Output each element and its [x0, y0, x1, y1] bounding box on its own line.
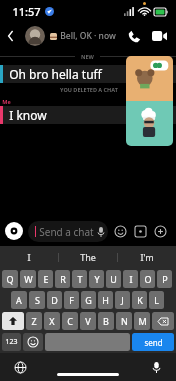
- button[interactable]: K: [132, 291, 147, 309]
- button[interactable]: Z: [26, 312, 42, 330]
- button[interactable]: Send a chat: [28, 221, 108, 242]
- button[interactable]: G: [81, 291, 96, 309]
- staticText: W: [24, 273, 33, 285]
- button[interactable]: X: [44, 312, 60, 330]
- staticText: E: [43, 273, 49, 285]
- button[interactable]: Snap: [126, 101, 173, 146]
- button[interactable]: Video call: [146, 23, 172, 49]
- button[interactable]: Camera: [5, 222, 23, 240]
- button[interactable]: O: [140, 270, 155, 288]
- button[interactable]: Numbers: [2, 333, 21, 351]
- button[interactable]: Q: [2, 270, 18, 288]
- button[interactable]: More: [152, 223, 169, 240]
- button[interactable]: N: [116, 312, 132, 330]
- staticText: C: [67, 315, 73, 327]
- staticText: Oh bro hella tuff: [9, 66, 102, 82]
- staticText: D: [51, 294, 58, 306]
- button[interactable]: Y: [89, 270, 104, 288]
- button[interactable]: Snap: [126, 56, 173, 101]
- button[interactable]: L: [149, 291, 164, 309]
- staticText: Y: [94, 273, 100, 285]
- staticText: G: [85, 294, 92, 306]
- staticText: 123: [5, 337, 18, 347]
- staticText: The: [80, 251, 96, 263]
- staticText: NEW: [81, 53, 94, 60]
- staticText: M: [138, 315, 147, 327]
- button[interactable]: Send: [132, 333, 174, 351]
- staticText: Bell, OK · now: [60, 30, 116, 42]
- staticText: H: [102, 294, 109, 306]
- staticText: Z: [31, 315, 37, 327]
- button[interactable]: Shift: [2, 312, 24, 330]
- button[interactable]: The: [59, 246, 117, 268]
- button[interactable]: Stickers: [112, 223, 129, 240]
- staticText: X: [49, 315, 55, 327]
- staticText: I: [129, 273, 133, 285]
- button[interactable]: H: [98, 291, 113, 309]
- button[interactable]: Oh bro hella tuff: [0, 65, 176, 83]
- staticText: Me: [2, 98, 11, 105]
- staticText: U: [110, 273, 117, 285]
- button[interactable]: I: [0, 246, 58, 268]
- button[interactable]: Change keyboard language: [12, 359, 28, 375]
- staticText: J: [121, 294, 124, 306]
- button[interactable]: Backspace: [152, 312, 174, 330]
- staticText: T: [77, 273, 83, 285]
- staticText: I'm: [140, 251, 154, 263]
- button[interactable]: I: [123, 270, 138, 288]
- staticText: send: [144, 337, 163, 348]
- button[interactable]: Voice input: [148, 359, 164, 375]
- staticText: I: [27, 251, 31, 263]
- button[interactable]: W: [20, 270, 36, 288]
- button[interactable]: S: [29, 291, 45, 309]
- staticText: A: [16, 294, 22, 306]
- button[interactable]: I'm: [118, 246, 176, 268]
- button[interactable]: T: [72, 270, 87, 288]
- staticText: P: [162, 273, 168, 285]
- staticText: V: [85, 315, 91, 327]
- button[interactable]: U: [106, 270, 121, 288]
- staticText: S: [35, 294, 40, 306]
- staticText: L: [154, 294, 159, 306]
- staticText: O: [144, 273, 152, 285]
- staticText: YOU DELETED A CHAT: [60, 86, 118, 93]
- button[interactable]: R: [55, 270, 70, 288]
- button[interactable]: Back: [0, 25, 22, 47]
- button[interactable]: F: [64, 291, 79, 309]
- staticText: Send a chat: [39, 225, 94, 239]
- button[interactable]: C: [62, 312, 78, 330]
- button[interactable]: D: [47, 291, 62, 309]
- button[interactable]: Space: [45, 333, 130, 351]
- button[interactable]: J: [115, 291, 130, 309]
- staticText: R: [60, 273, 66, 285]
- staticText: N: [121, 315, 128, 327]
- button[interactable]: I know: [0, 106, 176, 124]
- button[interactable]: Gallery: [132, 223, 149, 240]
- staticText: B: [103, 315, 109, 327]
- button[interactable]: V: [80, 312, 96, 330]
- staticText: F: [69, 294, 74, 306]
- button[interactable]: B: [98, 312, 114, 330]
- button[interactable]: E: [38, 270, 53, 288]
- staticText: K: [137, 294, 143, 306]
- button[interactable]: P: [157, 270, 172, 288]
- button[interactable]: Profile: [25, 26, 45, 46]
- staticText: Q: [6, 273, 14, 285]
- button[interactable]: Emoji: [23, 333, 43, 351]
- button[interactable]: A: [11, 291, 27, 309]
- button[interactable]: M: [134, 312, 150, 330]
- button[interactable]: Call: [122, 24, 146, 48]
- button[interactable]: Voice message: [94, 223, 108, 241]
- staticText: 11:57: [12, 4, 41, 19]
- staticText: I know: [9, 107, 47, 123]
